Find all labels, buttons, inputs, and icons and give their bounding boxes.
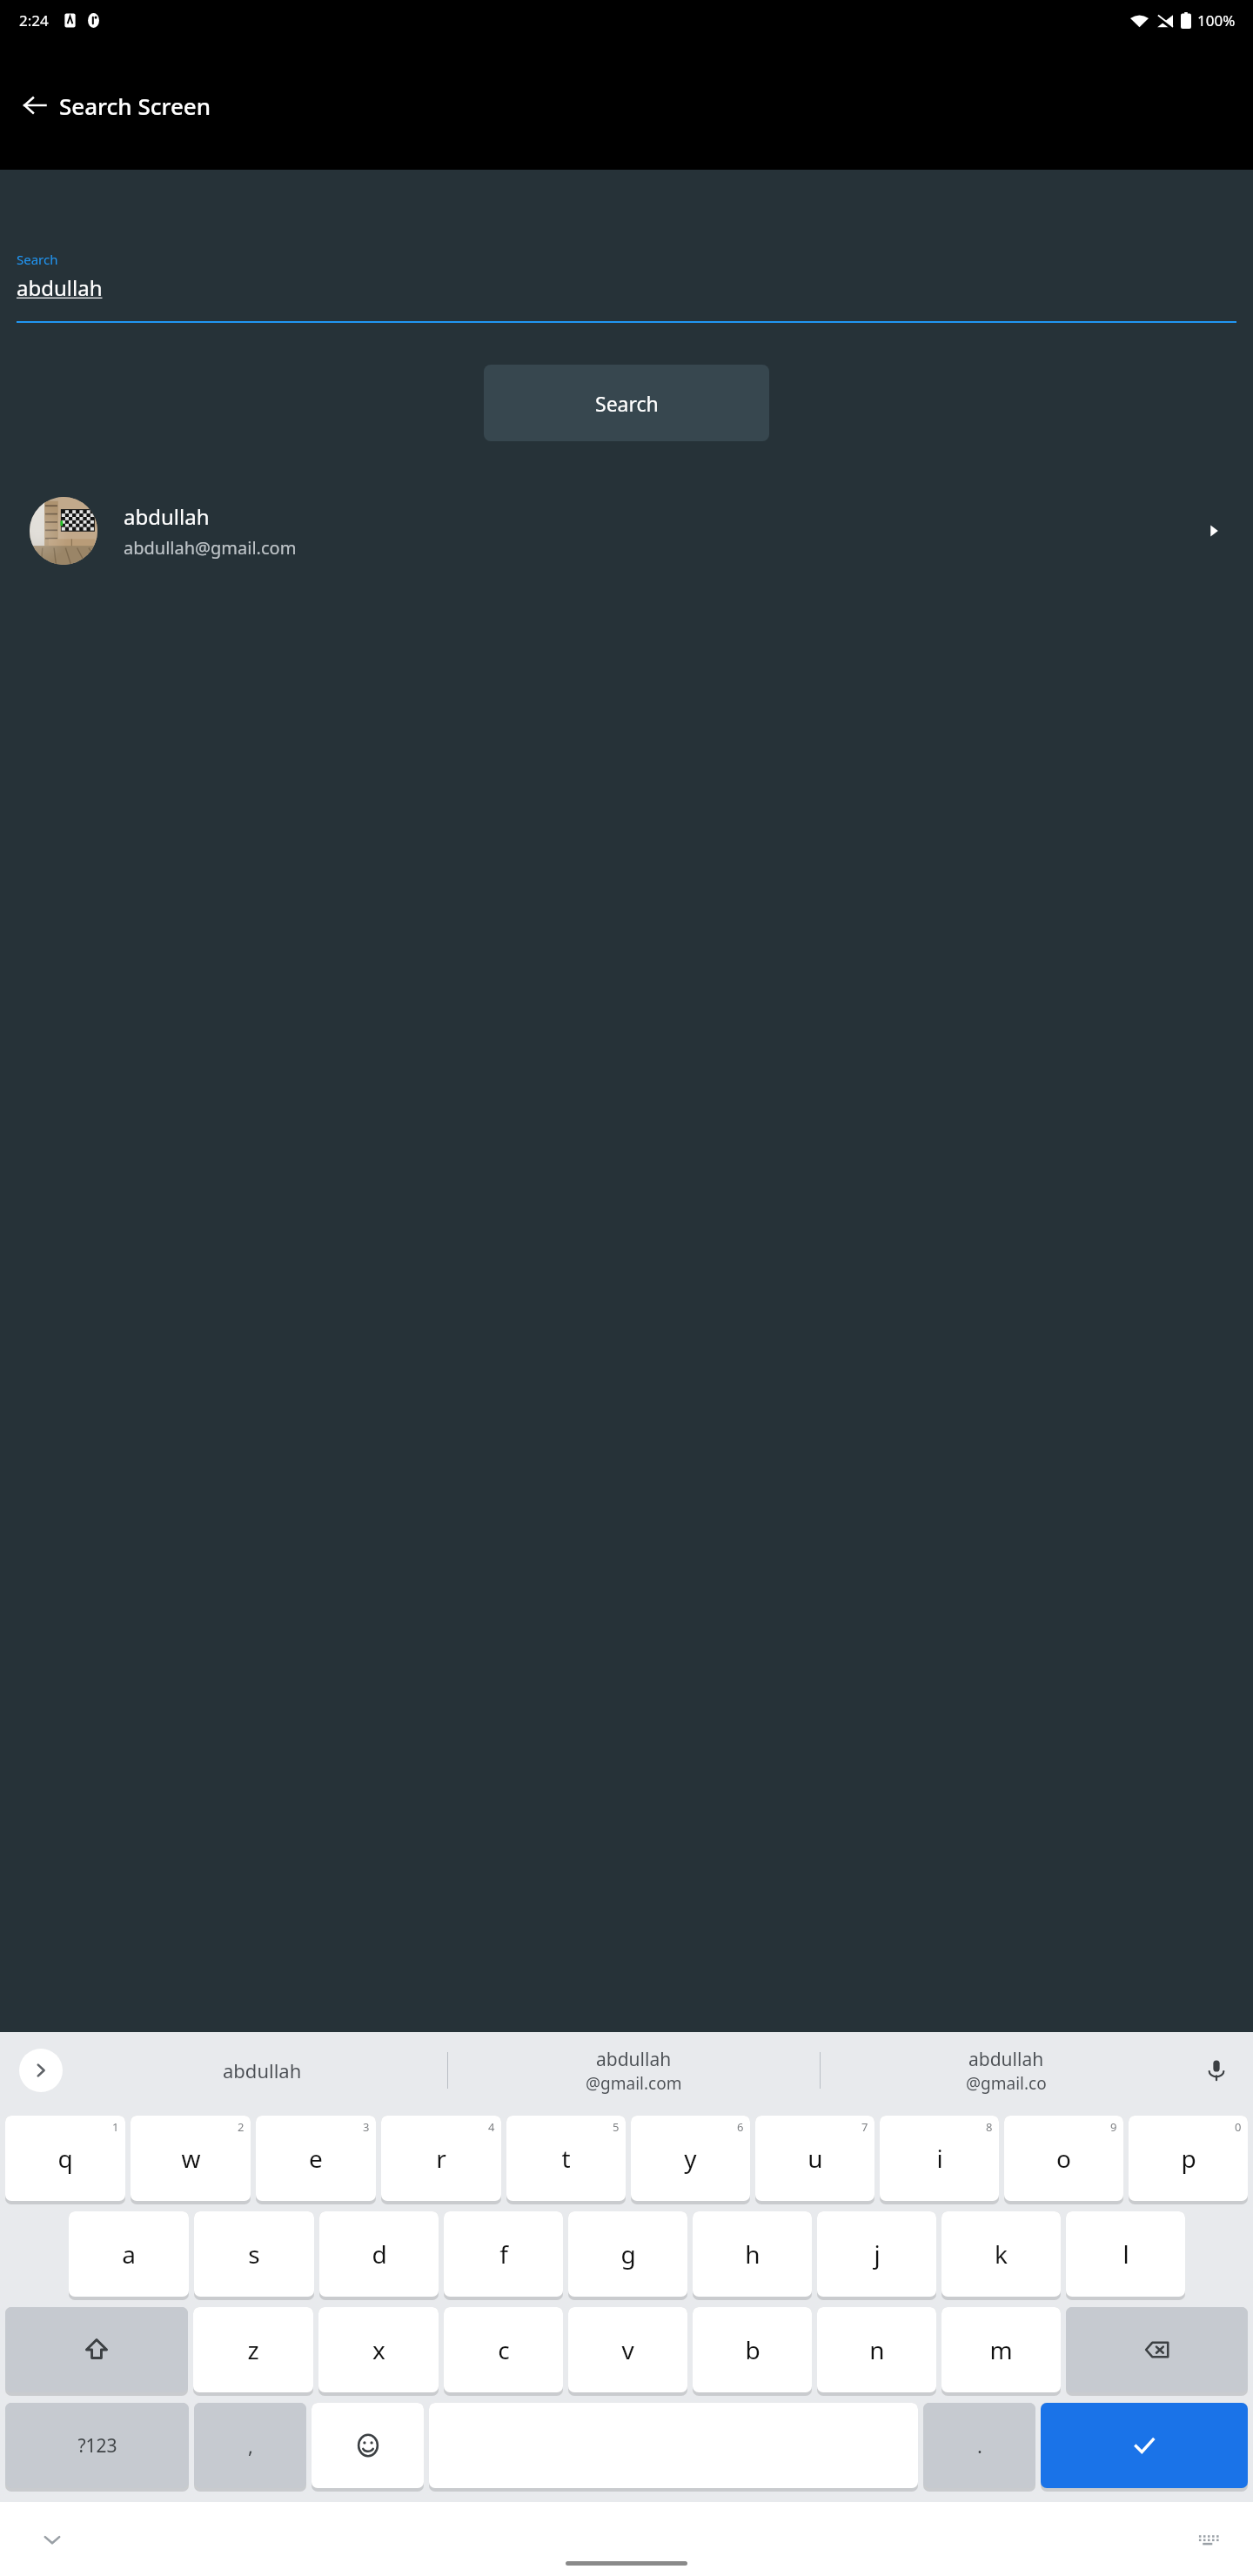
staticText: t bbox=[561, 2142, 571, 2175]
button[interactable]: f bbox=[444, 2211, 563, 2297]
staticText: Search bbox=[17, 251, 58, 268]
staticText: d bbox=[372, 2237, 387, 2271]
button[interactable]: , bbox=[194, 2403, 306, 2488]
button[interactable]: m bbox=[941, 2307, 1061, 2392]
button[interactable]: l bbox=[1066, 2211, 1185, 2297]
button[interactable]: s bbox=[194, 2211, 314, 2297]
button[interactable]: n bbox=[817, 2307, 936, 2392]
staticText: j bbox=[874, 2237, 881, 2271]
button[interactable]: Enter bbox=[1041, 2403, 1248, 2488]
staticText: b bbox=[745, 2333, 761, 2366]
button[interactable]: Voice input bbox=[1196, 2049, 1237, 2091]
staticText: , bbox=[248, 2432, 253, 2459]
button[interactable]: h bbox=[693, 2211, 812, 2297]
button[interactable]: abdullah bbox=[448, 2032, 820, 2109]
button[interactable]: t bbox=[506, 2116, 626, 2201]
button[interactable]: c bbox=[444, 2307, 563, 2392]
staticText: 100% bbox=[1197, 10, 1236, 30]
button[interactable]: Back bbox=[10, 81, 59, 130]
button[interactable]: Search bbox=[484, 365, 769, 441]
button[interactable]: r bbox=[381, 2116, 501, 2201]
button[interactable]: abdullah bbox=[821, 2032, 1192, 2109]
staticText: a bbox=[122, 2237, 136, 2271]
staticText: z bbox=[247, 2333, 259, 2366]
staticText: 8 bbox=[986, 2119, 993, 2135]
staticText: 5 bbox=[613, 2119, 620, 2135]
staticText: 2 bbox=[238, 2119, 245, 2135]
staticText: q bbox=[57, 2142, 73, 2175]
button[interactable]: y bbox=[631, 2116, 750, 2201]
staticText: ?123 bbox=[77, 2433, 117, 2459]
staticText: @gmail.co bbox=[966, 2072, 1047, 2095]
staticText: w bbox=[181, 2142, 201, 2175]
button[interactable]: Hide keyboard bbox=[31, 2519, 73, 2560]
staticText: 6 bbox=[737, 2119, 744, 2135]
staticText: 1 bbox=[112, 2119, 119, 2135]
staticText: o bbox=[1056, 2142, 1071, 2175]
button[interactable]: j bbox=[817, 2211, 936, 2297]
button[interactable]: o bbox=[1004, 2116, 1123, 2201]
button[interactable]: More suggestions bbox=[19, 2049, 63, 2092]
staticText: abdullah bbox=[968, 2047, 1044, 2072]
staticText: l bbox=[1122, 2237, 1129, 2271]
staticText: 3 bbox=[363, 2119, 370, 2135]
button[interactable]: Backspace bbox=[1066, 2307, 1248, 2392]
staticText: f bbox=[499, 2237, 508, 2271]
staticText: i bbox=[936, 2142, 943, 2175]
button[interactable]: Search bbox=[17, 251, 1236, 323]
staticText: p bbox=[1181, 2142, 1196, 2175]
staticText: v bbox=[621, 2333, 634, 2366]
button[interactable]: b bbox=[693, 2307, 812, 2392]
button[interactable]: Emoji bbox=[312, 2403, 424, 2488]
staticText: abdullah@gmail.com bbox=[124, 536, 297, 560]
button[interactable]: g bbox=[568, 2211, 687, 2297]
staticText: k bbox=[995, 2237, 1008, 2271]
button[interactable]: ?123 bbox=[5, 2403, 189, 2488]
staticText: Search Screen bbox=[59, 91, 211, 121]
button[interactable]: abdullah bbox=[0, 487, 1253, 574]
button[interactable]: abdullah bbox=[77, 2032, 447, 2109]
button[interactable]: e bbox=[256, 2116, 376, 2201]
button[interactable]: w bbox=[131, 2116, 251, 2201]
staticText: . bbox=[977, 2432, 982, 2459]
button[interactable]: u bbox=[755, 2116, 874, 2201]
button[interactable]: a bbox=[69, 2211, 189, 2297]
staticText: 4 bbox=[488, 2119, 495, 2135]
staticText: e bbox=[309, 2142, 323, 2175]
button[interactable]: v bbox=[568, 2307, 687, 2392]
staticText: x bbox=[372, 2333, 385, 2366]
staticText: Search bbox=[595, 390, 659, 417]
staticText: m bbox=[989, 2333, 1013, 2366]
staticText: h bbox=[745, 2237, 761, 2271]
staticText: r bbox=[436, 2142, 446, 2175]
staticText: 2:24 bbox=[19, 10, 49, 30]
staticText: n bbox=[869, 2333, 885, 2366]
staticText: s bbox=[248, 2237, 260, 2271]
staticText: c bbox=[498, 2333, 510, 2366]
staticText: y bbox=[684, 2142, 697, 2175]
button[interactable]: x bbox=[318, 2307, 439, 2392]
staticText: g bbox=[620, 2237, 636, 2271]
staticText: abdullah bbox=[124, 502, 210, 531]
staticText: 9 bbox=[1110, 2119, 1117, 2135]
button[interactable]: p bbox=[1129, 2116, 1248, 2201]
button[interactable]: z bbox=[193, 2307, 313, 2392]
button[interactable]: . bbox=[923, 2403, 1035, 2488]
staticText: abdullah bbox=[596, 2047, 672, 2072]
button[interactable]: i bbox=[880, 2116, 999, 2201]
button[interactable]: q bbox=[5, 2116, 125, 2201]
button[interactable]: Shift bbox=[5, 2307, 188, 2392]
button[interactable]: k bbox=[941, 2211, 1061, 2297]
staticText: 0 bbox=[1235, 2119, 1242, 2135]
staticText: 7 bbox=[861, 2119, 868, 2135]
button[interactable]: d bbox=[319, 2211, 439, 2297]
button[interactable]: Switch keyboard bbox=[1187, 2519, 1229, 2560]
staticText: abdullah bbox=[17, 273, 103, 302]
staticText: abdullah bbox=[223, 2057, 302, 2083]
staticText: u bbox=[807, 2142, 823, 2175]
staticText: @gmail.com bbox=[586, 2072, 682, 2095]
